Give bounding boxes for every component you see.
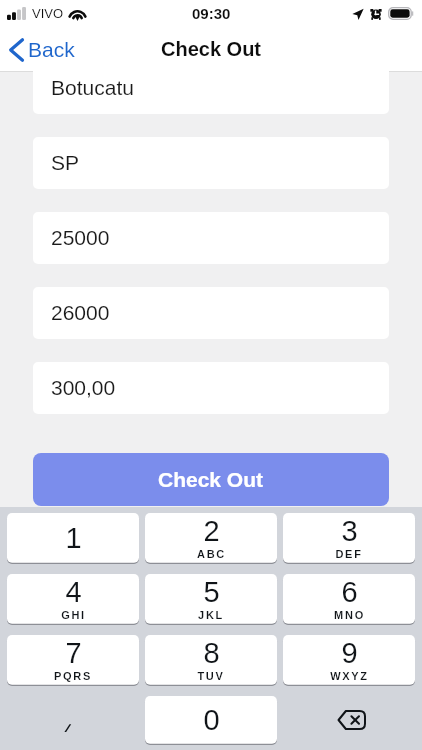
button[interactable]: 5 <box>145 574 277 625</box>
button[interactable]: Comma <box>7 696 139 745</box>
staticText: TUV <box>197 670 225 682</box>
staticText: 300,00 <box>51 376 116 399</box>
staticText: Botucatu <box>51 76 134 99</box>
staticText: Check Out <box>158 468 264 491</box>
button[interactable]: 1 <box>7 513 139 564</box>
staticText: Check Out <box>161 38 262 60</box>
staticText: 6 <box>341 576 358 608</box>
staticText: VIVO <box>32 6 64 21</box>
staticText: 8 <box>203 637 220 669</box>
staticText: 25000 <box>51 226 110 249</box>
button[interactable]: Back <box>0 34 87 66</box>
button[interactable]: 9 <box>283 635 415 686</box>
staticText: 5 <box>203 576 220 608</box>
button[interactable]: 6 <box>283 574 415 625</box>
button[interactable]: 0 <box>145 696 277 745</box>
staticText: Back <box>28 38 75 61</box>
staticText: 2 <box>203 515 220 547</box>
button[interactable]: 8 <box>145 635 277 686</box>
staticText: JKL <box>198 609 224 621</box>
button[interactable]: 4 <box>7 574 139 625</box>
staticText: SP <box>51 151 80 174</box>
button[interactable]: 25000 <box>33 212 389 264</box>
button[interactable]: Backspace <box>283 696 415 744</box>
button[interactable]: SP <box>33 137 389 189</box>
staticText: DEF <box>335 548 363 560</box>
staticText: MNO <box>334 609 365 621</box>
staticText: 7 <box>65 637 82 669</box>
staticText: 26000 <box>51 301 110 324</box>
button[interactable]: 7 <box>7 635 139 686</box>
staticText: ABC <box>197 548 226 560</box>
button[interactable]: 300,00 <box>33 362 389 414</box>
staticText: 0 <box>203 704 220 736</box>
staticText: 09:30 <box>192 5 231 22</box>
button[interactable]: 3 <box>283 513 415 564</box>
button[interactable]: Check Out <box>33 453 389 506</box>
staticText: PQRS <box>54 670 92 682</box>
staticText: 1 <box>65 522 82 554</box>
staticText: 9 <box>341 637 358 669</box>
staticText: 3 <box>341 515 358 547</box>
button[interactable]: 26000 <box>33 287 389 339</box>
button[interactable]: Botucatu <box>33 62 389 114</box>
staticText: GHI <box>61 609 86 621</box>
button[interactable]: 2 <box>145 513 277 564</box>
staticText: 4 <box>65 576 82 608</box>
staticText: WXYZ <box>330 670 369 682</box>
